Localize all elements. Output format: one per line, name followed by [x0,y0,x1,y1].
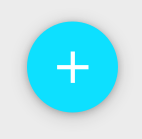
button[interactable]: Add [27,21,118,112]
